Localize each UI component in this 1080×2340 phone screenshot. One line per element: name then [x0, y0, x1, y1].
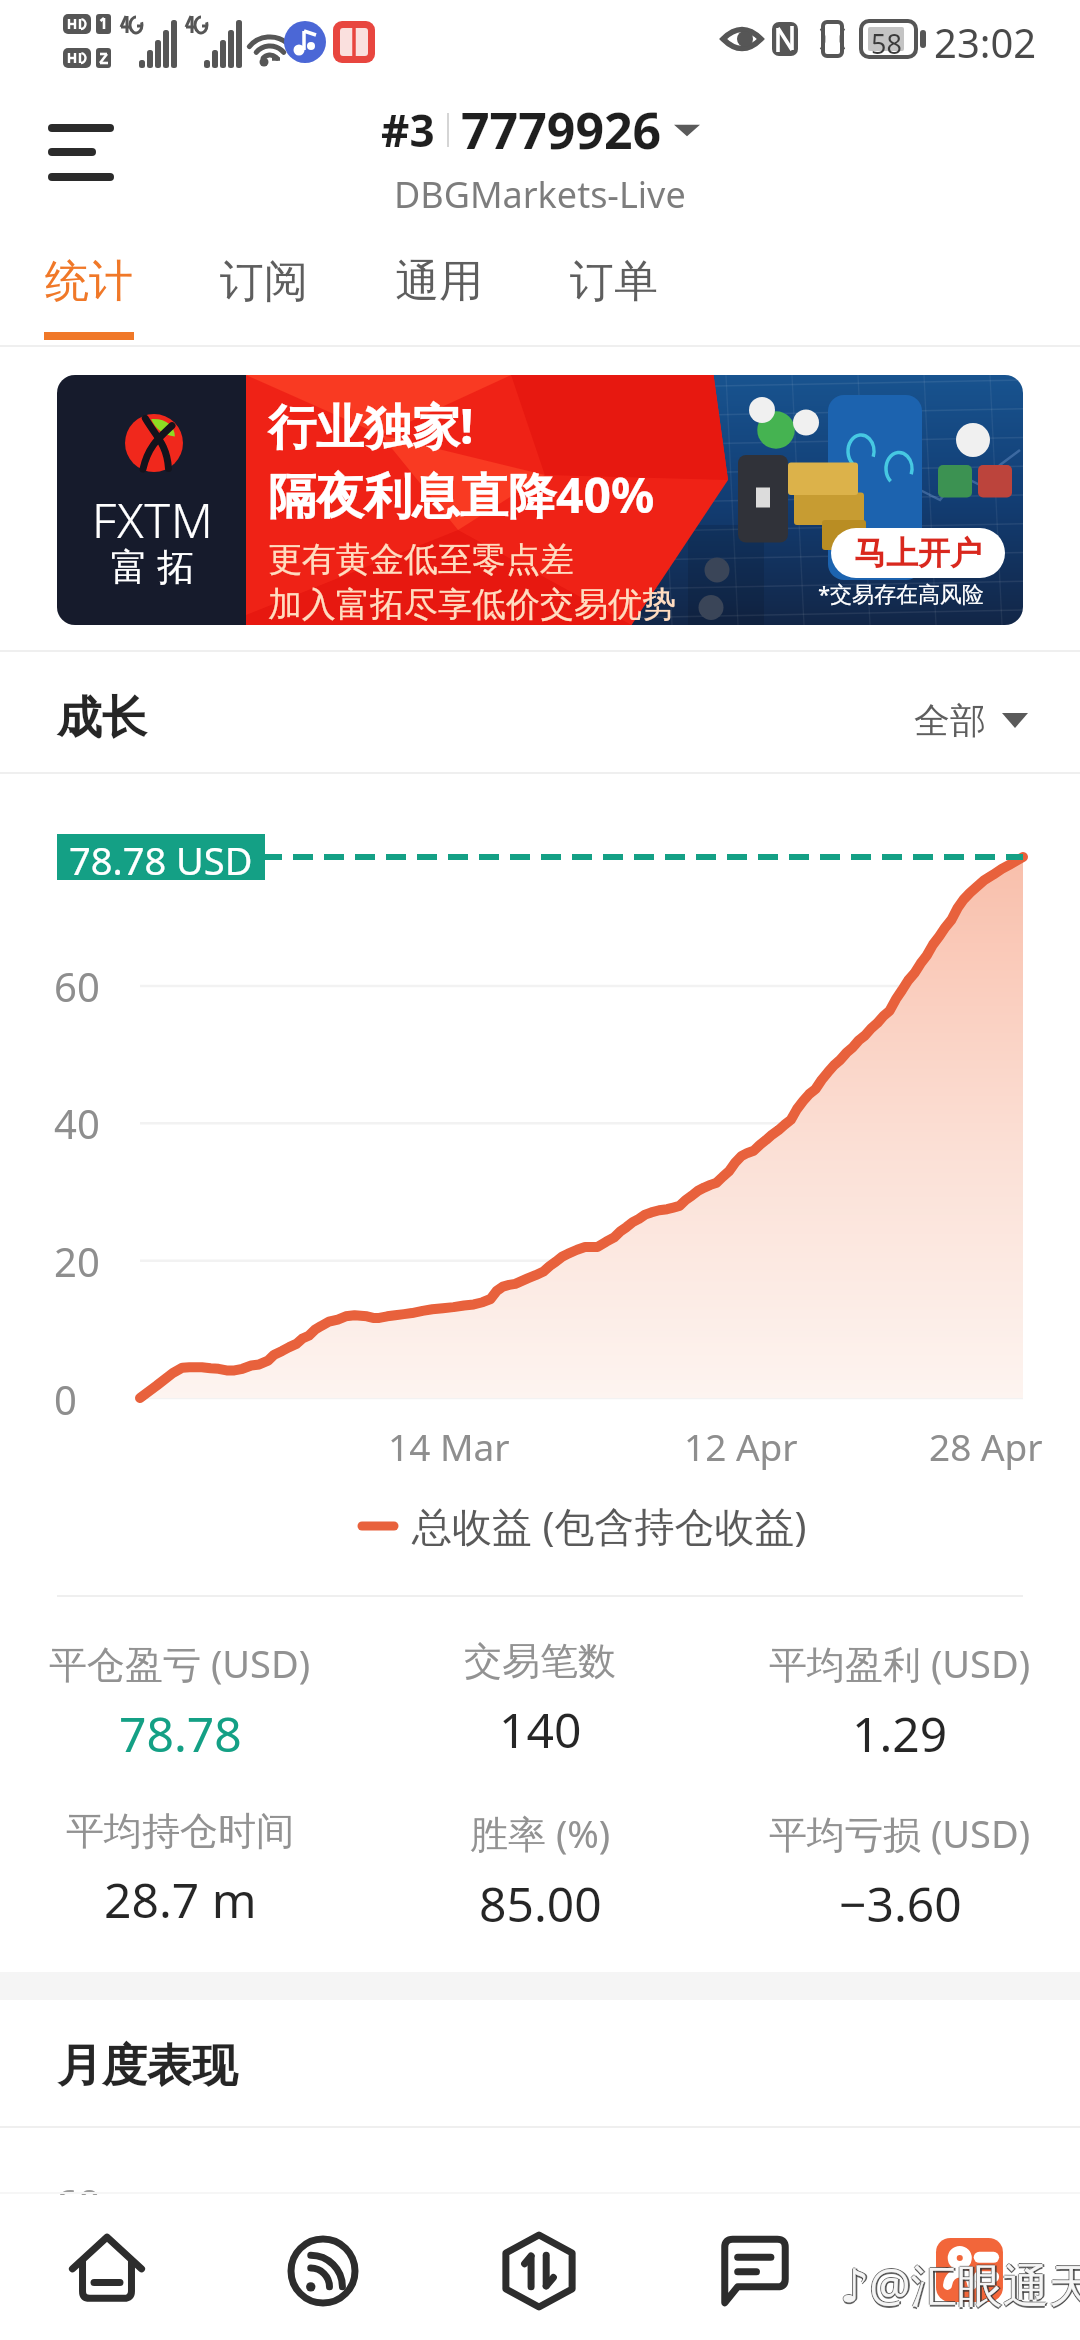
staticText: 平均持仓时间	[66, 1807, 294, 1855]
button[interactable]: Trade	[481, 2195, 597, 2340]
staticText: 交易笔数	[464, 1637, 616, 1685]
staticText: 12 Apr	[684, 1421, 798, 1471]
staticText: ♪@汇眼通天	[839, 2253, 1080, 2316]
button[interactable]: 订单	[558, 240, 670, 344]
staticText: 更有黄金低至零点差	[268, 538, 574, 581]
staticText: 40	[54, 1096, 100, 1150]
staticText: ♪@汇眼通天	[840, 2252, 1080, 2315]
staticText: 总收益 (包含持仓收益)	[412, 1498, 807, 1553]
staticText: 20	[54, 1234, 100, 1288]
staticText: 富 拓	[111, 540, 195, 591]
button[interactable]: Menu	[30, 100, 130, 205]
button[interactable]: Home	[49, 2195, 165, 2340]
button[interactable]: #3	[340, 96, 740, 219]
button[interactable]: Profile	[914, 2195, 1030, 2340]
button[interactable]: Messages	[697, 2195, 813, 2340]
button[interactable]: 通用	[383, 240, 495, 344]
staticText: 7779926	[461, 96, 662, 164]
staticText: 全部	[914, 698, 986, 743]
button[interactable]: FXTM	[57, 375, 1023, 625]
staticText: FXTM	[92, 487, 214, 552]
button[interactable]: 订阅	[208, 240, 320, 344]
staticText: ♪@汇眼通天	[840, 2253, 1080, 2316]
staticText: 通用	[395, 254, 483, 309]
staticText: 统计	[45, 254, 133, 309]
staticText: 60	[54, 959, 100, 1013]
staticText: 140	[499, 1697, 582, 1762]
staticText: 0	[54, 1372, 77, 1426]
button[interactable]: 统计	[33, 240, 145, 344]
staticText: ♪@汇眼通天	[840, 2255, 1080, 2318]
staticText: 78.78	[119, 1701, 242, 1766]
button[interactable]: 全部	[914, 694, 1028, 746]
staticText: *交易存在高风险	[818, 578, 985, 608]
staticText: 23:02	[934, 15, 1037, 69]
staticText: 订单	[570, 254, 658, 309]
staticText: 加入富拓尽享低价交易优势	[268, 583, 676, 626]
staticText: 85.00	[479, 1871, 602, 1936]
staticText: #3	[381, 100, 435, 160]
staticText: 平均盈利 (USD)	[769, 1637, 1031, 1689]
staticText: 平仓盈亏 (USD)	[49, 1637, 311, 1689]
staticText: 马上开户	[854, 533, 982, 573]
staticText: ♪@汇眼通天	[842, 2253, 1080, 2316]
staticText: 28.7 m	[104, 1867, 257, 1932]
staticText: 胜率 (%)	[470, 1807, 611, 1859]
staticText: 行业独家!	[268, 393, 474, 459]
staticText: −3.60	[839, 1871, 962, 1936]
staticText: 1.29	[852, 1701, 948, 1766]
staticText: 14 Mar	[388, 1421, 510, 1471]
staticText: 订阅	[220, 254, 308, 309]
staticText: 60	[55, 2176, 101, 2197]
staticText: 成长	[57, 690, 147, 747]
staticText: 平均亏损 (USD)	[769, 1807, 1031, 1859]
staticText: 58	[871, 25, 902, 62]
staticText: 78.78 USD	[69, 834, 253, 880]
staticText: 隔夜利息直降40%	[268, 462, 655, 528]
staticText: DBGMarkets-Live	[394, 170, 686, 219]
staticText: 28 Apr	[929, 1421, 1043, 1471]
button[interactable]: Signals	[265, 2195, 381, 2340]
staticText: 月度表现	[57, 2038, 237, 2095]
button[interactable]: 马上开户	[831, 528, 1005, 578]
